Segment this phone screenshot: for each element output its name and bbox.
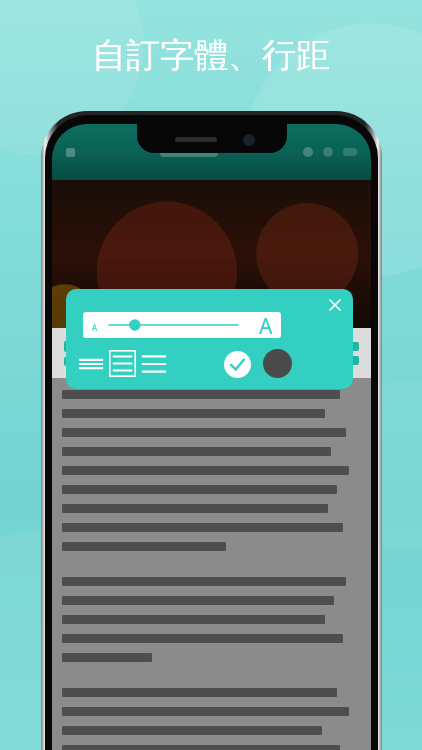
staticText: A xyxy=(92,322,98,333)
button[interactable]: Close xyxy=(324,294,346,316)
button[interactable]: Font size slider xyxy=(83,312,281,338)
button[interactable]: Line spacing xyxy=(80,356,102,372)
button[interactable]: Theme color xyxy=(263,349,292,378)
button[interactable]: Line spacing xyxy=(143,354,165,374)
button[interactable]: Confirm xyxy=(224,351,251,378)
button[interactable]: Line spacing medium xyxy=(109,350,136,377)
staticText: A xyxy=(259,312,273,338)
staticText: 自訂字體、行距 xyxy=(0,34,422,77)
